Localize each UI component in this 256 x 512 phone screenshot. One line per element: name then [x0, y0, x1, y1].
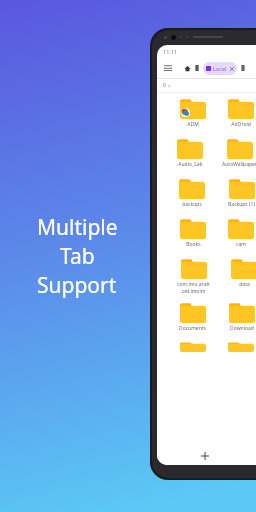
- button[interactable]: Books: [180, 218, 206, 248]
- staticText: data: [239, 281, 250, 288]
- staticText: 11:11: [163, 48, 178, 55]
- staticText: Support: [37, 271, 117, 300]
- button[interactable]: Other tab: [240, 65, 246, 71]
- staticText: ADM: [187, 121, 199, 128]
- button[interactable]: Home: [184, 65, 191, 72]
- button[interactable]: backups: [179, 178, 205, 208]
- staticText: cam: [236, 241, 246, 248]
- button[interactable]: data: [231, 258, 256, 288]
- button[interactable]: AutoWallpaper: [222, 138, 256, 168]
- button[interactable]: 0: [163, 79, 256, 92]
- button[interactable]: ADM: [180, 98, 206, 128]
- button[interactable]: Local: [206, 62, 234, 75]
- staticText: Audio_Lab: [178, 161, 203, 168]
- button[interactable]: com.imo.andr oid.imoim: [177, 258, 210, 294]
- button[interactable]: Storage: [194, 65, 200, 71]
- button[interactable]: cam: [228, 218, 254, 248]
- staticText: com.imo.andr oid.imoim: [177, 281, 210, 294]
- staticText: Books: [186, 241, 201, 248]
- button[interactable]: Documents: [179, 302, 206, 332]
- button[interactable]: Audio_Lab: [177, 138, 203, 168]
- button[interactable]: Add tab: [198, 449, 212, 463]
- button[interactable]: Download: [229, 302, 255, 332]
- button[interactable]: Menu: [162, 62, 174, 74]
- button[interactable]: AirDroid: [228, 98, 254, 128]
- staticText: AutoWallpaper: [222, 161, 256, 168]
- staticText: Download: [230, 325, 254, 332]
- staticText: backups: [182, 201, 202, 208]
- staticText: Documents: [179, 325, 206, 332]
- staticText: Backups (1): [228, 201, 255, 208]
- staticText: Local: [213, 65, 227, 72]
- button[interactable]: Backups (1): [228, 178, 255, 208]
- staticText: Multiple: [37, 213, 118, 242]
- staticText: 0: [163, 82, 166, 89]
- staticText: Tab: [60, 242, 95, 271]
- staticText: AirDroid: [231, 121, 251, 128]
- staticText: >: [168, 83, 171, 89]
